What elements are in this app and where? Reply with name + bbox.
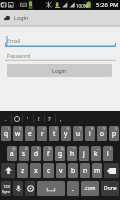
staticText: r (41, 129, 44, 138)
staticText: w (15, 129, 21, 138)
staticText: 1 (7, 126, 10, 131)
staticText: % (48, 146, 52, 151)
button[interactable]: c (43, 163, 54, 178)
button[interactable]: . (0, 111, 11, 126)
button[interactable]: y (61, 126, 71, 141)
button[interactable]: w (13, 126, 23, 141)
staticText: 123 (3, 184, 10, 189)
button[interactable]: . (67, 181, 79, 196)
button[interactable]: Voice input (13, 181, 23, 196)
button[interactable]: Shift (1, 163, 15, 178)
staticText: , (60, 115, 62, 123)
staticText: . (72, 184, 74, 194)
staticText: 8 (91, 126, 94, 131)
staticText: n (83, 166, 88, 176)
button[interactable]: Password (0, 47, 120, 62)
staticText: * (73, 146, 76, 151)
staticText: t (53, 129, 56, 138)
staticText: g (58, 149, 62, 158)
staticText: ( (110, 146, 112, 151)
button[interactable]: h (67, 146, 77, 161)
button[interactable]: e (25, 126, 35, 141)
staticText: i (89, 129, 91, 138)
button[interactable]: b (68, 163, 78, 178)
staticText: k (94, 149, 98, 158)
staticText: Done (104, 185, 117, 192)
staticText: Login (14, 14, 29, 21)
button[interactable]: i (85, 126, 95, 141)
button[interactable]: m (92, 163, 102, 178)
staticText: q (4, 129, 8, 138)
staticText: Email (7, 37, 21, 44)
button[interactable]: o (97, 126, 107, 141)
staticText: 7 (79, 126, 82, 131)
button[interactable]: r (37, 126, 47, 141)
staticText: $ (37, 146, 40, 151)
staticText: b (71, 166, 76, 176)
staticText: o (100, 129, 104, 138)
button[interactable]: .com (81, 181, 99, 196)
staticText: 2 (19, 126, 22, 131)
staticText: z (21, 166, 25, 176)
staticText: + (97, 146, 100, 151)
button[interactable]: ' (22, 111, 33, 126)
button[interactable] (11, 111, 22, 126)
button[interactable]: Done (101, 181, 119, 196)
button[interactable]: ? (44, 111, 55, 126)
staticText: x (34, 166, 38, 176)
staticText: d (34, 149, 38, 158)
button[interactable]: Backspace (104, 163, 119, 178)
staticText: 5 (55, 126, 58, 131)
staticText: # (25, 146, 28, 151)
staticText: 4 (43, 126, 46, 131)
staticText: v (59, 166, 63, 176)
button[interactable]: s (19, 146, 29, 161)
button[interactable]: j (79, 146, 89, 161)
button[interactable]: Symbols (1, 181, 11, 196)
staticText: p (112, 129, 116, 138)
staticText: h (70, 149, 75, 158)
button[interactable]: p (109, 126, 119, 141)
button[interactable]: u (73, 126, 83, 141)
staticText: Login (52, 67, 67, 74)
staticText: 6 (67, 126, 70, 131)
button[interactable]: ! (33, 111, 44, 126)
button[interactable]: n (80, 163, 90, 178)
staticText: & (61, 146, 64, 151)
staticText: c (47, 166, 51, 176)
button[interactable]: g (55, 146, 65, 161)
button[interactable]: Space (37, 181, 65, 196)
button[interactable]: l (103, 146, 113, 161)
button[interactable]: x (30, 163, 41, 178)
staticText: m (94, 166, 101, 176)
button[interactable]: k (91, 146, 101, 161)
staticText: 5:26 PM (96, 1, 119, 9)
button[interactable]: a (7, 146, 17, 161)
staticText: ' (27, 115, 29, 123)
staticText: 0 (115, 126, 118, 131)
staticText: . (5, 115, 7, 123)
staticText: j (83, 149, 85, 158)
staticText: ! (38, 115, 40, 123)
staticText: y (64, 129, 68, 138)
staticText: e (28, 129, 32, 138)
button[interactable]: t (49, 126, 59, 141)
staticText: f (47, 149, 50, 158)
button[interactable]: Settings (25, 181, 35, 196)
staticText: .com (84, 185, 96, 192)
button[interactable]: Login (7, 64, 112, 77)
button[interactable]: v (56, 163, 66, 178)
staticText: 3 (31, 126, 34, 131)
staticText: ? (48, 115, 51, 123)
staticText: - (86, 146, 88, 151)
button[interactable]: q (1, 126, 11, 141)
staticText: Sym (2, 189, 10, 194)
staticText: 9 (103, 126, 106, 131)
staticText: s (22, 149, 26, 158)
button[interactable]: z (17, 163, 28, 178)
button[interactable]: , (55, 111, 66, 126)
button[interactable]: d (31, 146, 41, 161)
button[interactable]: f (43, 146, 53, 161)
staticText: Password (7, 52, 31, 59)
button[interactable]: Email (0, 32, 120, 48)
